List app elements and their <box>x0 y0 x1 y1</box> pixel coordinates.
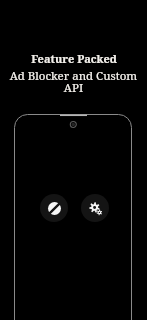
staticText: Ad Blocker and Custom API <box>0 68 147 96</box>
staticText: Feature Packed <box>31 51 117 66</box>
button[interactable]: Ad Blocker <box>40 194 68 222</box>
button[interactable]: Custom API Settings <box>81 194 109 222</box>
